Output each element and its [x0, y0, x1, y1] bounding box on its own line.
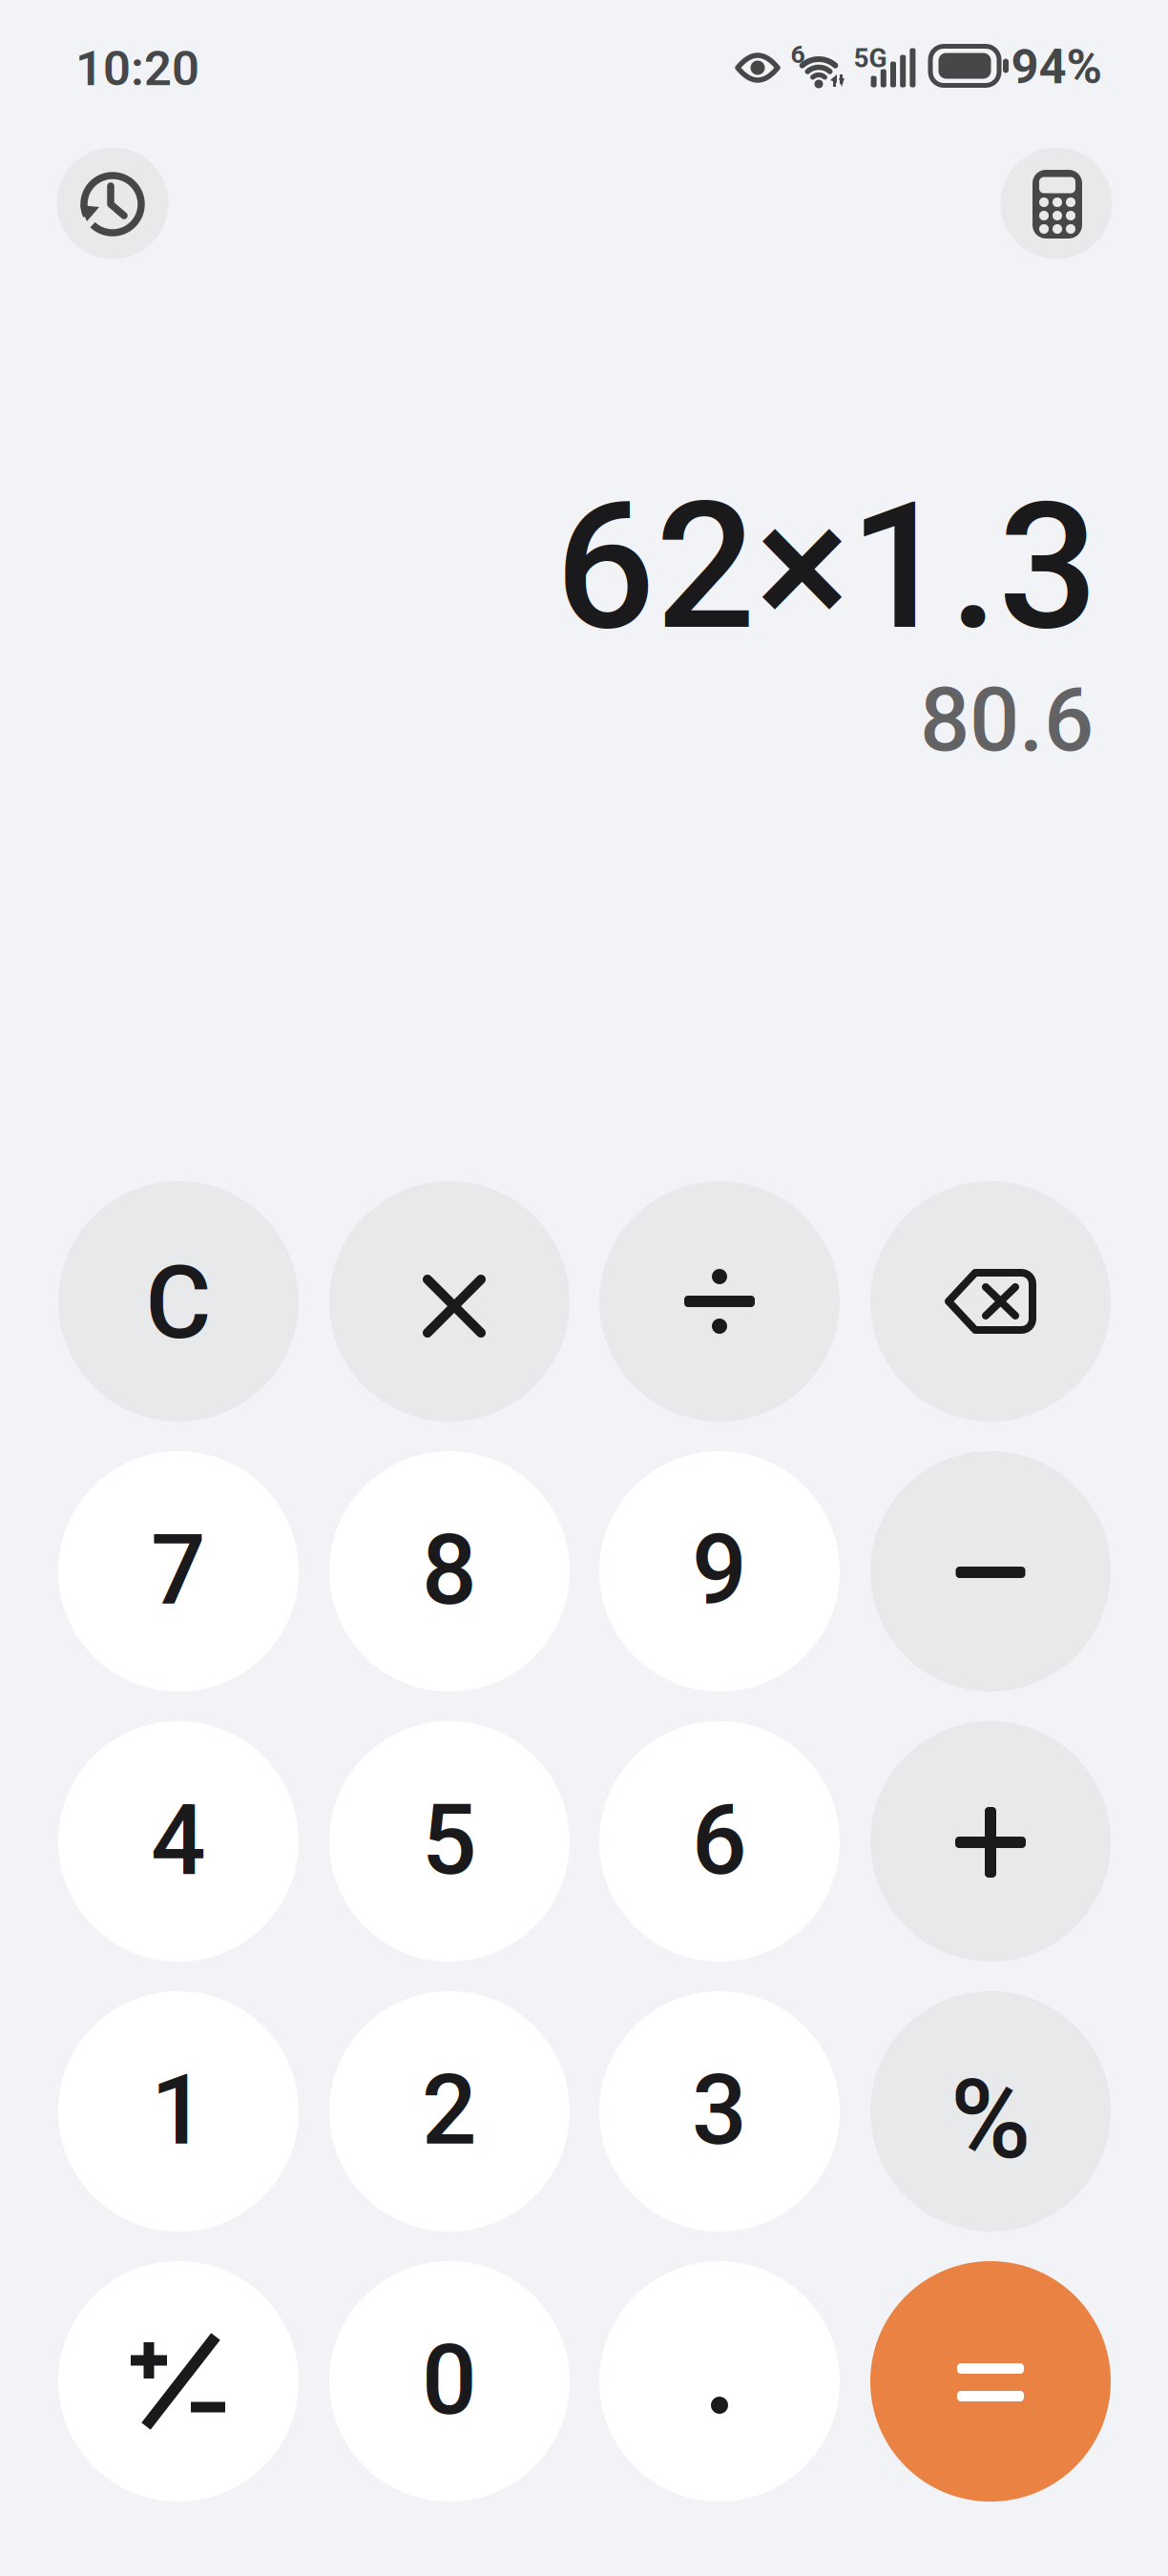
button[interactable]: Minus	[870, 1451, 1111, 1692]
button[interactable]: 5	[329, 1721, 570, 1962]
staticText: 6	[791, 39, 805, 69]
staticText: 10:20	[75, 40, 199, 97]
staticText: 8	[422, 1514, 477, 1627]
button[interactable]: Percent	[870, 1991, 1111, 2232]
button[interactable]: 1	[58, 1991, 299, 2232]
button[interactable]: 7	[58, 1451, 299, 1692]
staticText: 5	[422, 1784, 477, 1897]
staticText: 5G	[854, 43, 887, 74]
staticText: 1	[151, 2054, 206, 2167]
staticText: C	[146, 1244, 211, 1362]
staticText: 0	[422, 2324, 477, 2437]
button[interactable]: 4	[58, 1721, 299, 1962]
button[interactable]: History	[57, 147, 168, 259]
staticText: 9	[692, 1514, 747, 1627]
staticText: 62×1.3	[555, 464, 1098, 670]
button[interactable]: 8	[329, 1451, 570, 1692]
staticText: %	[950, 2056, 1031, 2184]
button[interactable]: 6	[599, 1721, 840, 1962]
staticText: 6	[692, 1784, 747, 1897]
staticText: 4	[151, 1784, 206, 1897]
button[interactable]: Divide	[599, 1181, 840, 1422]
staticText: 80.6	[920, 669, 1094, 772]
button[interactable]: Equals	[870, 2261, 1111, 2502]
staticText: 2	[422, 2054, 477, 2167]
button[interactable]: 0	[329, 2261, 570, 2502]
button[interactable]: Calculator	[1001, 147, 1112, 259]
button[interactable]: 2	[329, 1991, 570, 2232]
staticText: 7	[151, 1514, 206, 1627]
button[interactable]: Multiply	[329, 1181, 570, 1422]
button[interactable]: Clear	[58, 1181, 299, 1422]
button[interactable]: Toggle sign	[58, 2261, 299, 2502]
button[interactable]: Decimal point	[599, 2261, 840, 2502]
button[interactable]: 3	[599, 1991, 840, 2232]
staticText: 3	[692, 2054, 747, 2167]
staticText: 94%	[1011, 38, 1102, 95]
button[interactable]: Backspace	[870, 1181, 1111, 1422]
button[interactable]: 9	[599, 1451, 840, 1692]
button[interactable]: Plus	[870, 1721, 1111, 1962]
